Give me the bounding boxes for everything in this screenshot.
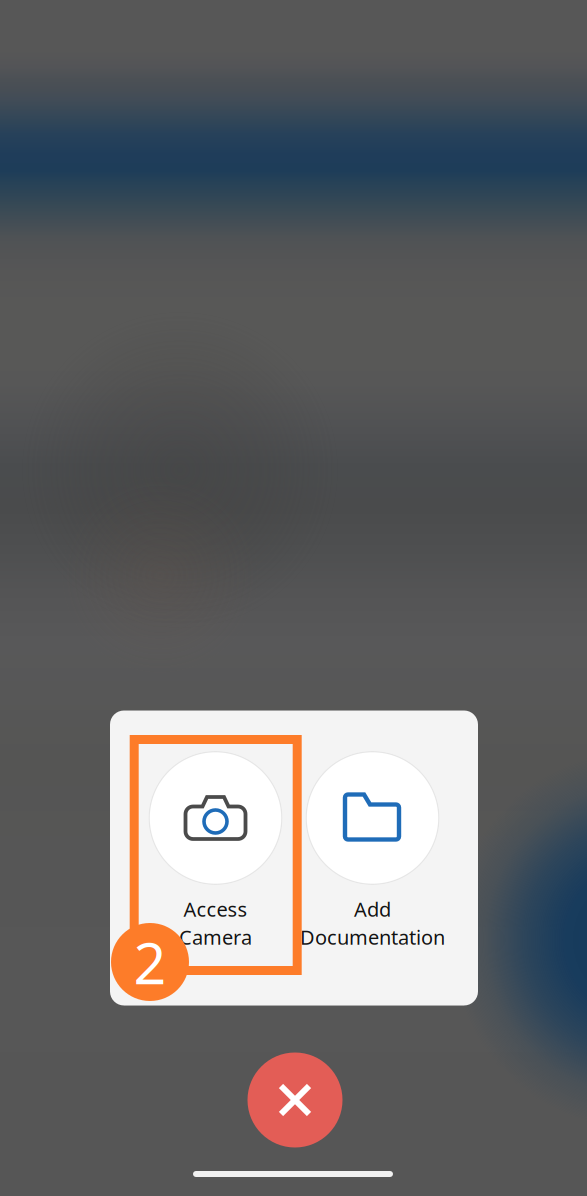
button[interactable]: Close: [247, 1052, 342, 1147]
staticText: Add: [354, 896, 391, 922]
staticText: Camera: [179, 924, 252, 950]
staticText: Access: [183, 896, 247, 922]
staticText: 2: [133, 924, 166, 1000]
staticText: Documentation: [300, 924, 445, 950]
button[interactable]: Access: [130, 751, 300, 963]
button[interactable]: Add: [287, 751, 457, 963]
